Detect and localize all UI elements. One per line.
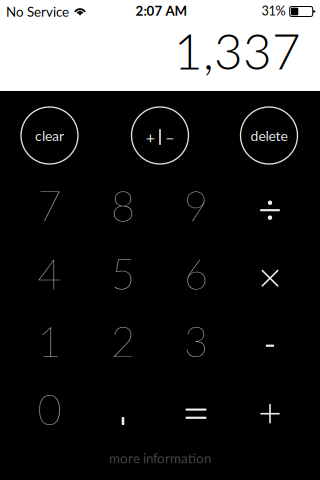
staticText: – (165, 127, 174, 147)
button[interactable]: 1 (12, 307, 86, 374)
staticText: + (146, 127, 155, 147)
staticText: 9 (184, 181, 208, 230)
button[interactable]: 7 (12, 172, 86, 239)
staticText: more information (109, 450, 211, 466)
staticText: 8 (111, 181, 135, 230)
button[interactable]: 9 (159, 172, 233, 239)
staticText: 2 (111, 316, 135, 366)
staticText: 3 (184, 316, 208, 366)
button[interactable]: + (115, 97, 205, 173)
staticText: 5 (111, 249, 135, 298)
staticText: 0 (37, 384, 61, 434)
button[interactable]: 3 (159, 307, 233, 374)
button[interactable]: 6 (159, 240, 233, 307)
button[interactable]: Add (233, 380, 307, 447)
button[interactable]: 0 (12, 375, 86, 442)
button[interactable]: Equals (159, 380, 233, 447)
button[interactable]: Multiply (233, 245, 307, 312)
button[interactable]: more information (55, 444, 265, 472)
button[interactable]: 2 (86, 307, 160, 374)
staticText: No Service (6, 3, 69, 19)
staticText: delete (250, 127, 287, 144)
staticText: 31% (261, 3, 285, 18)
button[interactable]: Divide (233, 177, 307, 244)
button[interactable]: 4 (12, 240, 86, 307)
staticText: 4 (37, 249, 61, 298)
button[interactable]: clear (4, 97, 94, 173)
button[interactable]: 5 (86, 240, 160, 307)
button[interactable]: 8 (86, 172, 160, 239)
button[interactable]: Subtract (233, 312, 307, 379)
staticText: 2:07 AM (135, 2, 187, 18)
staticText: 6 (184, 249, 208, 298)
staticText: 1,337 (174, 21, 301, 80)
button[interactable]: delete (224, 97, 314, 173)
staticText: clear (35, 127, 64, 144)
button[interactable]: Decimal point (86, 375, 160, 442)
staticText: 1 (37, 316, 61, 366)
staticText: 7 (37, 181, 61, 230)
